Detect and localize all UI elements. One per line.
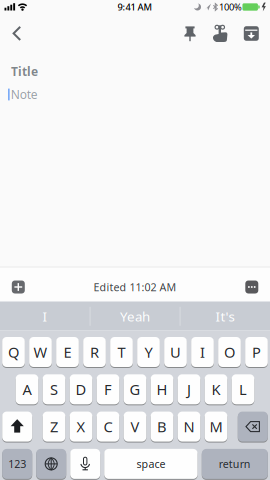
button[interactable]: G	[124, 374, 146, 404]
staticText: It's	[215, 307, 234, 325]
staticText: E	[63, 342, 71, 362]
button[interactable]: I	[2, 302, 88, 330]
staticText: 100%	[219, 1, 242, 13]
staticText: Edited 11:02 AM	[93, 280, 176, 294]
staticText: N	[183, 417, 194, 436]
button[interactable]: S	[43, 374, 65, 404]
staticText: B	[157, 417, 167, 436]
button[interactable]: Z	[43, 412, 65, 442]
staticText: L	[239, 380, 247, 399]
staticText: 9:41 AM	[117, 1, 152, 13]
staticText: F	[104, 380, 112, 399]
staticText: V	[130, 417, 139, 436]
staticText: R	[90, 342, 99, 362]
button[interactable]: O	[218, 337, 241, 367]
staticText: W	[33, 342, 47, 362]
button[interactable]: J	[178, 374, 200, 404]
button[interactable]: L	[232, 374, 254, 404]
button[interactable]: Yeah	[92, 302, 178, 330]
button[interactable]: V	[124, 412, 146, 442]
staticText: H	[156, 380, 167, 399]
button[interactable]: Space	[104, 449, 198, 479]
staticText: space	[136, 457, 165, 471]
staticText: J	[187, 380, 191, 399]
button[interactable]: More options	[242, 277, 262, 297]
button[interactable]: B	[151, 412, 173, 442]
staticText: Q	[8, 342, 19, 362]
button[interactable]: Return	[202, 449, 268, 479]
staticText: return	[219, 457, 251, 471]
button[interactable]: Back	[2, 18, 32, 48]
button[interactable]: E	[56, 337, 79, 367]
button[interactable]: R	[83, 337, 106, 367]
button[interactable]: W	[29, 337, 52, 367]
staticText: I	[42, 307, 47, 325]
button[interactable]: D	[70, 374, 92, 404]
button[interactable]: It's	[182, 302, 268, 330]
button[interactable]: Add	[8, 277, 28, 297]
staticText: Title	[11, 63, 38, 79]
button[interactable]: X	[70, 412, 92, 442]
button[interactable]: U	[164, 337, 187, 367]
staticText: A	[22, 380, 31, 399]
staticText: D	[75, 380, 86, 399]
staticText: G	[129, 380, 140, 399]
staticText: T	[117, 342, 125, 362]
button[interactable]: Shift	[2, 412, 32, 442]
staticText: Yeah	[120, 307, 150, 325]
staticText: 123	[8, 457, 26, 471]
staticText: Z	[50, 417, 58, 436]
staticText: Note	[11, 86, 38, 102]
staticText: P	[252, 342, 261, 362]
button[interactable]: C	[97, 412, 119, 442]
button[interactable]: Remind me	[206, 19, 234, 47]
button[interactable]: I	[191, 337, 214, 367]
button[interactable]: H	[151, 374, 173, 404]
button[interactable]: Pin note	[176, 19, 204, 47]
staticText: O	[224, 342, 235, 362]
button[interactable]: P	[245, 337, 268, 367]
button[interactable]: Archive	[237, 19, 265, 47]
staticText: K	[211, 380, 220, 399]
button[interactable]: Delete	[238, 412, 268, 442]
staticText: I	[200, 342, 205, 362]
staticText: X	[76, 417, 85, 436]
button[interactable]: Q	[2, 337, 25, 367]
button[interactable]: Dictate	[70, 449, 100, 479]
button[interactable]: Next keyboard	[36, 449, 66, 479]
button[interactable]: K	[205, 374, 227, 404]
button[interactable]: Numbers	[2, 449, 32, 479]
button[interactable]: N	[178, 412, 200, 442]
staticText: C	[103, 417, 112, 436]
staticText: U	[170, 342, 181, 362]
button[interactable]: A	[16, 374, 38, 404]
staticText: S	[50, 380, 58, 399]
button[interactable]: M	[205, 412, 227, 442]
staticText: Y	[144, 342, 152, 362]
button[interactable]: Y	[137, 337, 160, 367]
staticText: M	[209, 417, 222, 436]
button[interactable]: F	[97, 374, 119, 404]
button[interactable]: T	[110, 337, 133, 367]
